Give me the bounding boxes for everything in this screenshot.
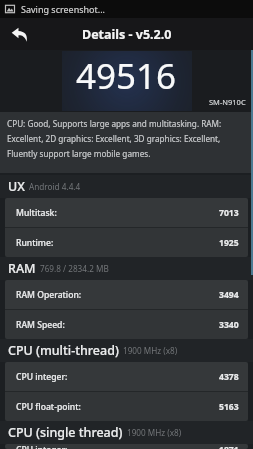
staticText: 5163 xyxy=(219,401,239,413)
staticText: 769.8 / 2834.2 MB xyxy=(40,263,109,274)
button[interactable]: Multitask: xyxy=(5,198,248,227)
button[interactable]: CPU integer: xyxy=(5,362,248,391)
staticText: CPU (multi-thread) xyxy=(8,342,119,359)
staticText: Android 4.4.4 xyxy=(29,181,81,192)
staticText: CPU integer: xyxy=(16,371,68,383)
staticText: 4378 xyxy=(219,371,239,383)
button[interactable]: Runtime: xyxy=(5,228,248,257)
button[interactable]: Back xyxy=(5,20,33,48)
button[interactable]: RAM Operation: xyxy=(5,280,248,309)
staticText: CPU float-point: xyxy=(16,401,81,413)
staticText: SM-N910C xyxy=(209,97,246,107)
button[interactable]: CPU integer: xyxy=(5,444,248,449)
staticText: 1925 xyxy=(219,237,239,249)
staticText: Runtime: xyxy=(16,237,54,249)
staticText: 1900 MHz (x8) xyxy=(127,427,182,438)
staticText: CPU integer: xyxy=(16,444,68,449)
staticText: RAM Operation: xyxy=(16,289,82,301)
staticText: 7013 xyxy=(219,207,239,219)
staticText: 3494 xyxy=(219,289,239,301)
staticText: 1900 MHz (x8) xyxy=(123,345,178,356)
staticText: CPU: Good, Supports large apps and multi… xyxy=(7,118,247,160)
staticText: 3340 xyxy=(219,319,239,331)
staticText: Details - v5.2.0 xyxy=(82,26,172,43)
button[interactable]: RAM Speed: xyxy=(5,310,248,339)
staticText: UX xyxy=(8,178,25,195)
button[interactable]: CPU float-point: xyxy=(5,392,248,421)
staticText: Saving screenshot... xyxy=(21,3,106,15)
staticText: CPU (single thread) xyxy=(8,424,123,441)
staticText: RAM Speed: xyxy=(16,319,65,331)
staticText: RAM xyxy=(8,260,36,277)
staticText: 49516 xyxy=(76,52,177,100)
staticText: 1871 xyxy=(219,444,239,449)
staticText: Multitask: xyxy=(16,207,57,219)
